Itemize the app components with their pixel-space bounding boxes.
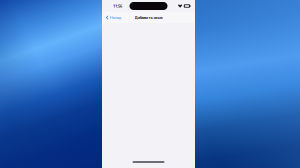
- staticText: 11:56: [113, 3, 122, 9]
- button[interactable]: Назад: [102, 13, 121, 22]
- staticText: Добавить язык: [134, 15, 162, 20]
- staticText: Назад: [110, 15, 121, 20]
